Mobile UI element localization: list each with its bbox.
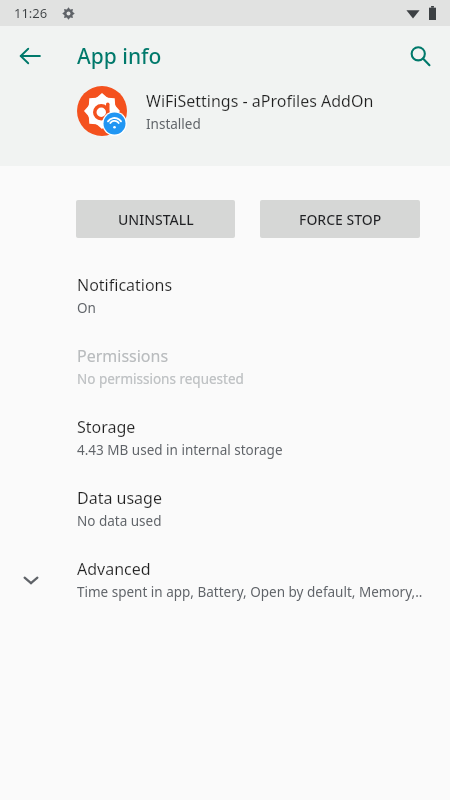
staticText: WiFiSettings - aProfiles AddOn [146, 90, 374, 112]
button[interactable]: Back [10, 36, 50, 76]
staticText: Advanced [77, 558, 151, 580]
staticText: On [77, 299, 96, 317]
staticText: FORCE STOP [299, 210, 382, 229]
staticText: Data usage [77, 487, 162, 509]
button[interactable]: FORCE STOP [260, 200, 420, 238]
button[interactable]: Data usage [0, 473, 450, 544]
button[interactable]: UNINSTALL [76, 200, 235, 238]
staticText: 4.43 MB used in internal storage [77, 441, 283, 459]
staticText: Permissions [77, 345, 169, 367]
button[interactable]: Search [398, 34, 442, 78]
button[interactable]: Advanced [0, 544, 450, 615]
staticText: Installed [146, 115, 201, 133]
button[interactable]: Permissions [0, 331, 450, 402]
button[interactable]: Storage [0, 402, 450, 473]
staticText: App info [77, 42, 162, 71]
staticText: Time spent in app, Battery, Open by defa… [77, 583, 423, 601]
staticText: No permissions requested [77, 370, 244, 388]
staticText: Storage [77, 416, 136, 438]
button[interactable]: Notifications [0, 260, 450, 331]
staticText: No data used [77, 512, 162, 530]
staticText: 11:26 [14, 4, 48, 22]
staticText: Notifications [77, 274, 173, 296]
staticText: UNINSTALL [118, 210, 194, 229]
